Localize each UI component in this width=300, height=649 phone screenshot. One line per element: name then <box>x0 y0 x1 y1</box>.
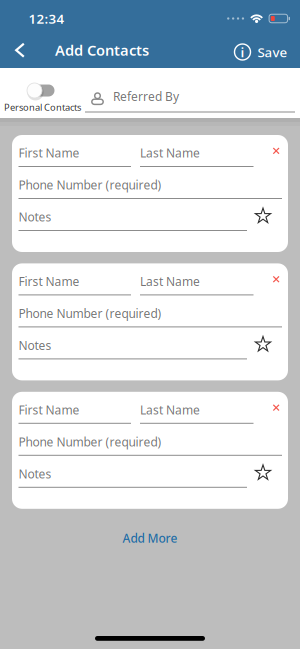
staticText: Notes <box>18 337 51 353</box>
staticText: Last Name <box>140 273 200 289</box>
staticText: Phone Number (required) <box>18 434 161 450</box>
button[interactable]: Remove contact <box>273 273 282 283</box>
button[interactable]: Favorite <box>255 209 282 225</box>
staticText: Save <box>257 43 287 61</box>
staticText: Last Name <box>140 145 200 161</box>
button[interactable]: Personal Contacts <box>27 83 55 101</box>
staticText: Phone Number (required) <box>18 305 161 321</box>
button[interactable]: Favorite <box>255 466 282 482</box>
staticText: Last Name <box>140 402 200 418</box>
staticText: First Name <box>18 145 79 161</box>
button[interactable]: Remove contact <box>273 402 282 411</box>
staticText: i <box>240 43 244 61</box>
button[interactable]: Favorite <box>255 337 282 353</box>
button[interactable]: Info <box>234 44 250 60</box>
button[interactable]: Save <box>250 43 300 61</box>
staticText: First Name <box>18 402 79 418</box>
staticText: Personal Contacts <box>4 101 81 113</box>
staticText: 12:34 <box>28 10 64 27</box>
staticText: Referred By <box>113 88 179 104</box>
staticText: Notes <box>18 466 51 482</box>
button[interactable]: Remove contact <box>273 145 282 154</box>
staticText: Notes <box>18 209 51 225</box>
staticText: Add More <box>122 530 177 546</box>
button[interactable]: Back <box>0 43 25 58</box>
staticText: Add Contacts <box>55 40 149 60</box>
staticText: Phone Number (required) <box>18 177 161 193</box>
staticText: First Name <box>18 273 79 289</box>
button[interactable]: Add More <box>122 530 177 546</box>
